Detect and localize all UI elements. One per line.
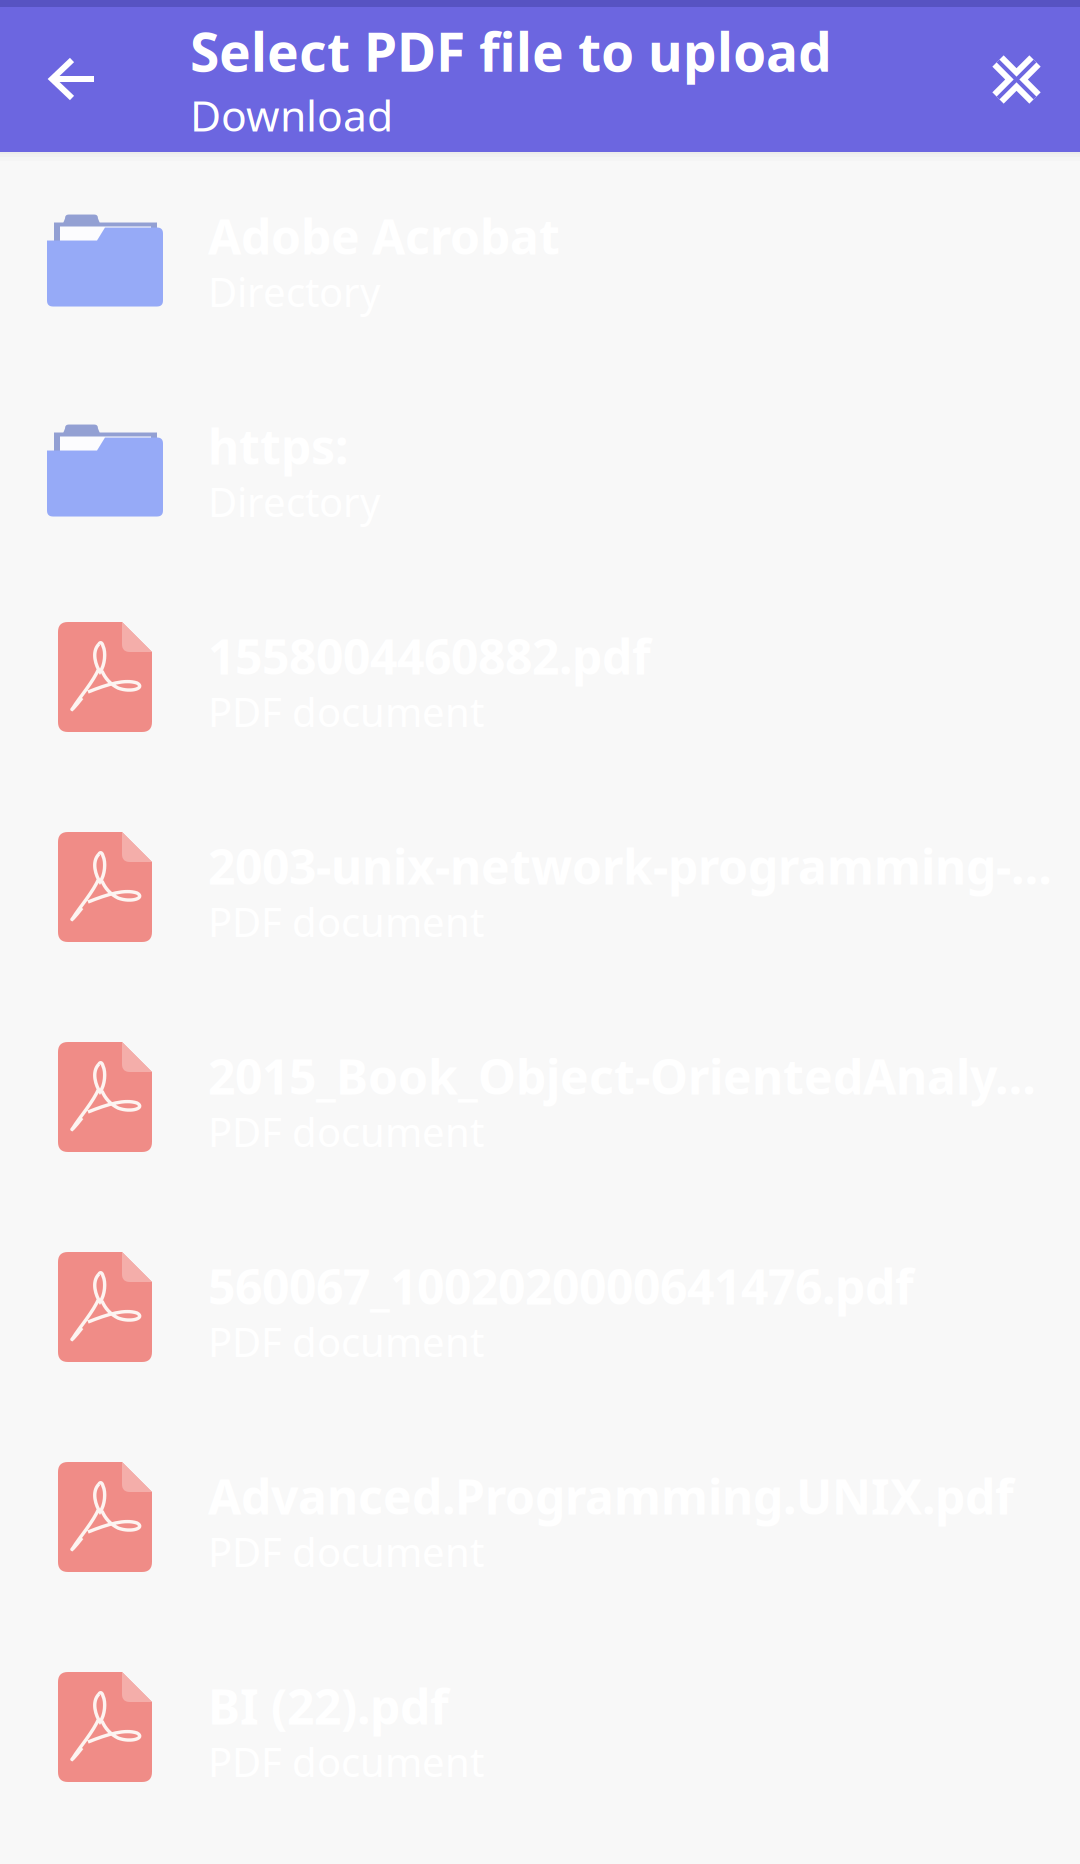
staticText: 1558004460882.pdf [208,624,651,688]
staticText: Download [190,87,393,143]
button[interactable]: 1558004460882.pdf [0,572,1080,782]
button[interactable]: Close [973,56,1080,103]
button[interactable]: 2015_Book_Object-OrientedAnaly… [0,992,1080,1202]
button[interactable]: BI (22).pdf [0,1622,1080,1832]
button[interactable]: Back [0,58,190,101]
button[interactable]: 560067_1002020000641476.pdf [0,1202,1080,1412]
button[interactable]: Advanced.Programming.UNIX.pdf [0,1412,1080,1622]
button[interactable]: https: [0,362,1080,572]
staticText: Select PDF file to upload [190,16,832,87]
button[interactable]: Adobe Acrobat [0,152,1080,362]
button[interactable]: 2003-unix-network-programming-… [0,782,1080,992]
